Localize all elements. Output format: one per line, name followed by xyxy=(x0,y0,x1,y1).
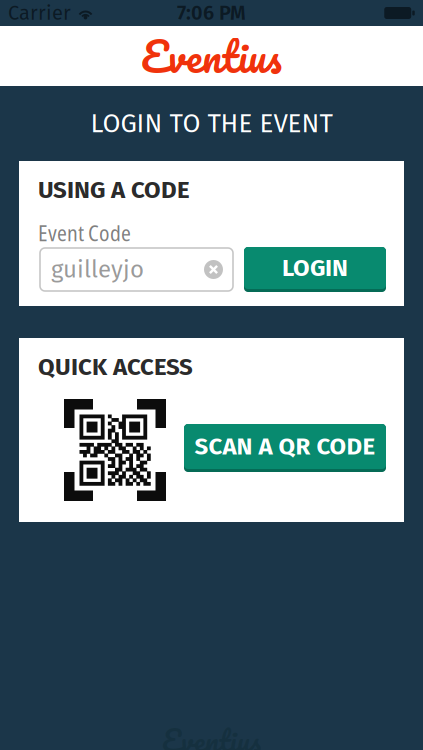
staticText: Eventius xyxy=(162,715,261,750)
staticText: SCAN A QR CODE xyxy=(194,432,375,461)
button[interactable]: LOGIN xyxy=(244,247,386,292)
staticText: guilleyjo xyxy=(51,255,144,284)
staticText: 7:06 PM xyxy=(177,1,246,25)
staticText: Carrier xyxy=(8,1,71,25)
button[interactable]: SCAN A QR CODE xyxy=(184,424,386,472)
staticText: QUICK ACCESS xyxy=(38,353,193,381)
staticText: Event Code xyxy=(38,218,131,248)
staticText: LOGIN TO THE EVENT xyxy=(90,108,332,139)
staticText: LOGIN xyxy=(282,254,348,282)
staticText: USING A CODE xyxy=(38,176,190,204)
staticText: Eventius xyxy=(141,21,282,91)
